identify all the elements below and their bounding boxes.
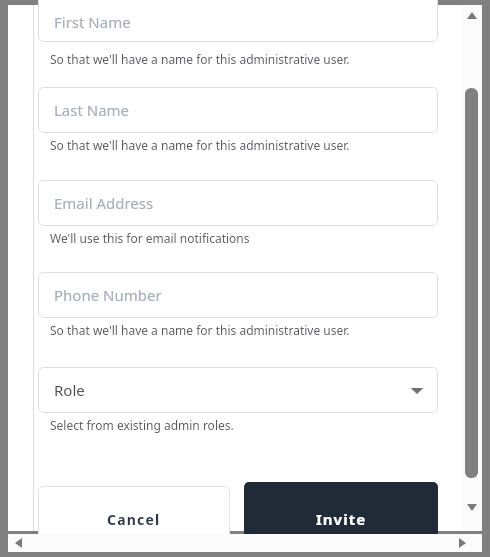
button[interactable]: Scroll down (462, 497, 482, 517)
button[interactable]: Role (38, 367, 438, 413)
staticText: Role (54, 380, 85, 400)
staticText: Invite (316, 509, 367, 529)
button[interactable]: Phone Number (38, 272, 438, 318)
button[interactable]: Scroll up (462, 5, 482, 25)
button[interactable]: First Name (38, 0, 438, 42)
other: Open role dropdown (410, 383, 424, 397)
button[interactable]: Scroll right (452, 534, 472, 552)
staticText: Email Address (54, 193, 154, 213)
button[interactable]: Vertical scrollbar (465, 88, 478, 478)
staticText: So that we'll have a name for this admin… (50, 137, 350, 153)
staticText: Cancel (107, 510, 161, 529)
staticText: First Name (54, 12, 131, 32)
staticText: Select from existing admin roles. (50, 417, 234, 433)
staticText: So that we'll have a name for this admin… (50, 322, 350, 338)
button[interactable]: Invite (244, 482, 438, 538)
staticText: Last Name (54, 100, 130, 120)
button[interactable]: Last Name (38, 87, 438, 133)
staticText: So that we'll have a name for this admin… (50, 51, 350, 67)
staticText: We'll use this for email notifications (50, 230, 250, 246)
button[interactable]: Cancel (38, 486, 230, 538)
button[interactable]: Email Address (38, 180, 438, 226)
staticText: Phone Number (54, 285, 162, 305)
button[interactable]: Scroll left (8, 534, 28, 552)
